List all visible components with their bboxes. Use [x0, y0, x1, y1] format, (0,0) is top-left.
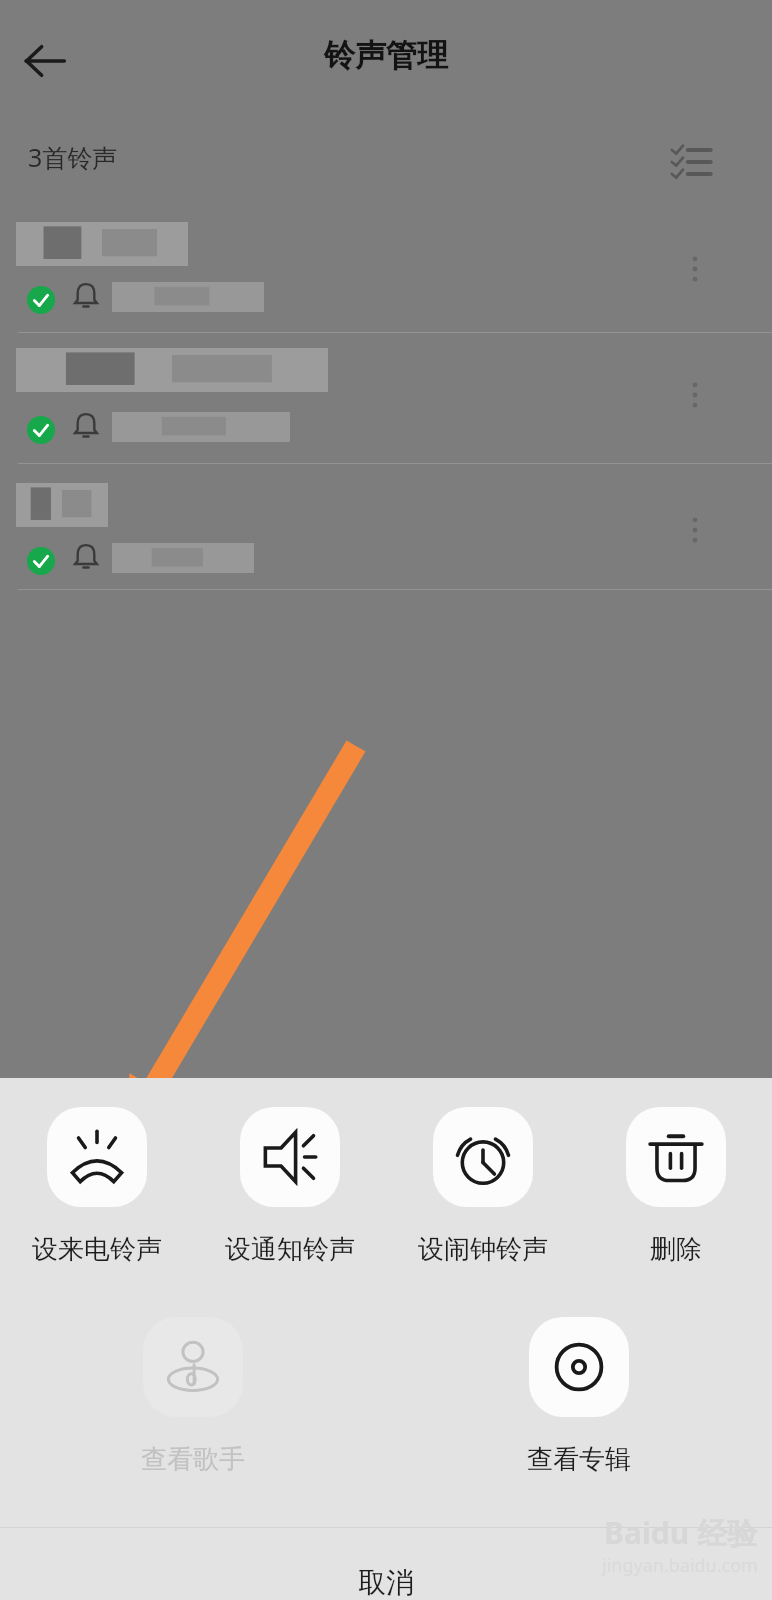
button[interactable]: Back — [12, 28, 78, 94]
staticText: 3首铃声 — [28, 140, 118, 174]
button[interactable] — [0, 483, 772, 587]
button[interactable] — [0, 222, 772, 326]
staticText: 删除 — [650, 1233, 702, 1266]
button[interactable]: 设来电铃声 — [0, 1107, 193, 1266]
staticText: Baidu 经验 — [604, 1512, 758, 1553]
button[interactable]: Multi select — [662, 133, 720, 191]
button[interactable]: 设通知铃声 — [193, 1107, 386, 1266]
button[interactable]: More options — [670, 505, 720, 555]
staticText: 设通知铃声 — [225, 1233, 355, 1266]
staticText: 查看专辑 — [527, 1443, 631, 1476]
button[interactable]: More options — [670, 370, 720, 420]
button[interactable]: 删除 — [579, 1107, 772, 1266]
staticText: 取消 — [358, 1565, 414, 1600]
button[interactable]: 查看专辑 — [386, 1317, 772, 1476]
button[interactable]: More options — [670, 244, 720, 294]
staticText: 设来电铃声 — [32, 1233, 162, 1266]
staticText: 设闹钟铃声 — [418, 1233, 548, 1266]
button[interactable] — [0, 348, 772, 452]
button[interactable]: 查看歌手 — [0, 1317, 386, 1476]
button[interactable]: 设闹钟铃声 — [386, 1107, 579, 1266]
staticText: 铃声管理 — [0, 36, 772, 75]
staticText: jingyan.baidu.com — [602, 1553, 758, 1578]
staticText: 查看歌手 — [141, 1443, 245, 1476]
button[interactable]: 取消 — [0, 1528, 772, 1600]
